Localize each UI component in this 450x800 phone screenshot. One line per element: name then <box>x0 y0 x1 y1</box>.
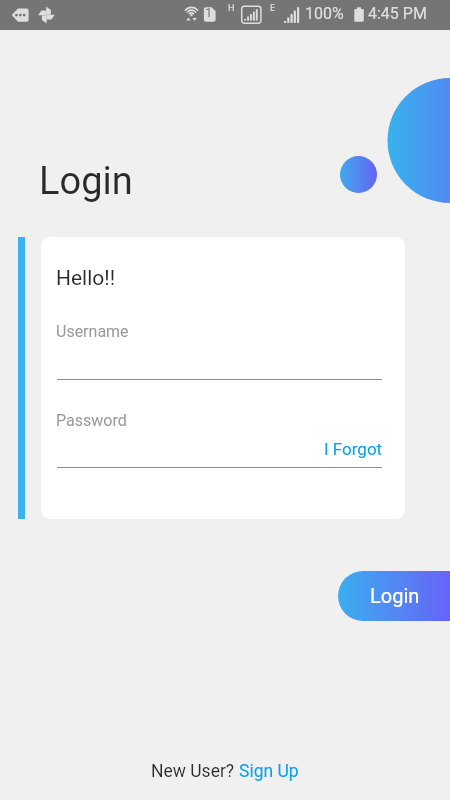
button[interactable]: Sign Up <box>239 761 299 782</box>
button[interactable]: Password <box>57 406 382 468</box>
staticText: New User? <box>151 761 239 782</box>
staticText: Hello!! <box>56 266 116 291</box>
staticText: E <box>270 3 276 14</box>
staticText: H <box>228 3 235 14</box>
button[interactable]: Username <box>57 317 382 380</box>
staticText: Password <box>56 411 127 430</box>
staticText: Login <box>39 159 133 204</box>
button[interactable]: I Forgot <box>324 439 383 459</box>
button[interactable]: Login <box>338 571 450 621</box>
staticText: Username <box>56 322 129 341</box>
staticText: 1 <box>205 5 213 20</box>
staticText: 100% <box>305 4 344 23</box>
staticText: Login <box>370 584 420 607</box>
staticText: I Forgot <box>324 439 383 459</box>
staticText: 4:45 PM <box>368 4 427 23</box>
